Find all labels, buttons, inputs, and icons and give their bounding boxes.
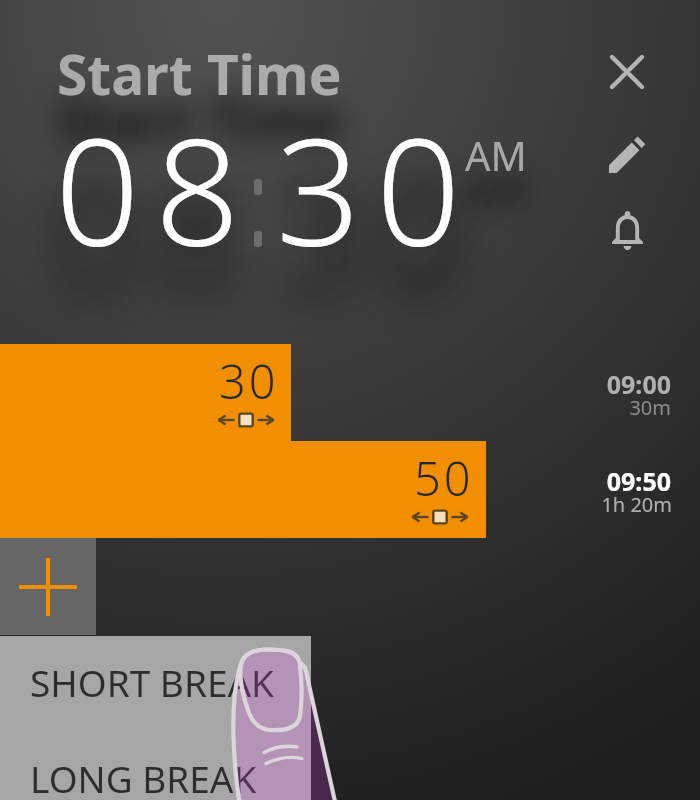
staticText: 08 [55, 88, 256, 290]
button[interactable]: Close [597, 42, 657, 102]
staticText: AM [465, 128, 527, 182]
button[interactable]: 30 [0, 344, 291, 441]
staticText: Start Time [57, 36, 342, 111]
button[interactable]: SHORT BREAK [0, 636, 311, 733]
staticText: SHORT BREAK [30, 657, 275, 707]
staticText: 1h 20m [520, 491, 672, 518]
button[interactable]: LONG BREAK [0, 733, 311, 800]
button[interactable]: Edit [597, 124, 657, 184]
button[interactable]: Alarm [597, 200, 657, 260]
staticText: 09:00 [520, 367, 671, 401]
button[interactable]: Add break [0, 538, 96, 635]
staticText: LONG BREAK [30, 753, 257, 800]
staticText: 30m [520, 394, 671, 421]
staticText: 09:50 [520, 464, 671, 498]
staticText: 30 [219, 349, 279, 413]
staticText: 50 [414, 446, 474, 510]
button[interactable]: 50 [0, 441, 486, 538]
staticText: 30 [276, 88, 477, 290]
